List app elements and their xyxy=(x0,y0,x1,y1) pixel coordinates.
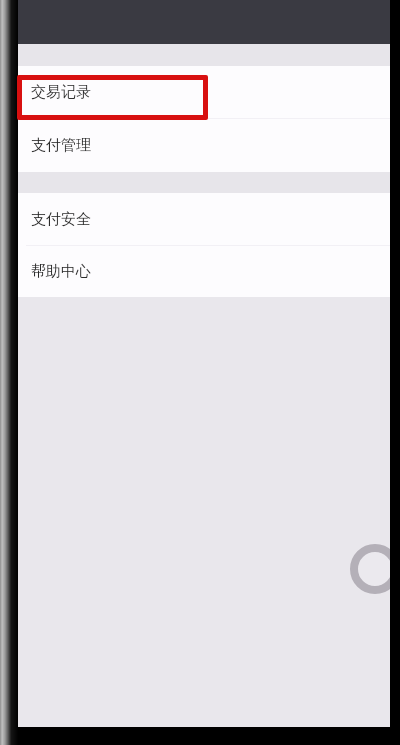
staticText: 帮助中心 xyxy=(31,262,91,281)
button[interactable]: 帮助中心 xyxy=(18,246,390,297)
button[interactable]: 支付管理 xyxy=(18,119,390,172)
button[interactable]: Assistive touch xyxy=(349,543,400,595)
staticText: 支付安全 xyxy=(31,210,91,229)
button[interactable]: 支付安全 xyxy=(18,193,390,245)
staticText: 支付管理 xyxy=(31,136,91,155)
staticText: 交易记录 xyxy=(31,83,91,102)
button[interactable]: 交易记录 xyxy=(18,66,390,118)
